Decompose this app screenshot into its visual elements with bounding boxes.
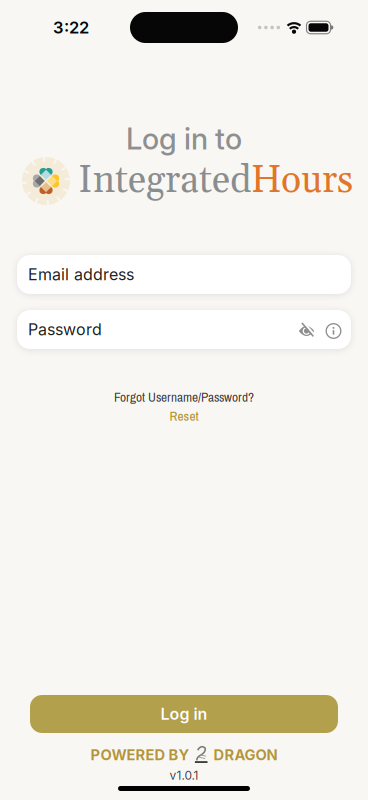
staticText: Forgot Username/Password?	[114, 388, 254, 406]
button[interactable]: Password requirements	[315, 323, 351, 338]
staticText: v1.0.1	[169, 768, 198, 782]
button[interactable]: Show password	[298, 322, 315, 339]
staticText: Password	[28, 320, 102, 339]
button[interactable]: Reset	[169, 407, 198, 425]
staticText: Integrated	[78, 157, 251, 205]
staticText: 3:22	[53, 17, 89, 37]
staticText: Hours	[251, 157, 353, 205]
button[interactable]: Log in	[0, 695, 368, 733]
staticText: POWERED BY	[90, 746, 189, 764]
staticText: Reset	[169, 407, 198, 425]
staticText: Log in to	[126, 121, 242, 156]
staticText: DRAGON	[213, 746, 277, 764]
staticText: Log in	[160, 704, 207, 724]
button[interactable]: Password	[0, 310, 368, 349]
button[interactable]: Email address	[0, 255, 368, 294]
staticText: Email address	[28, 265, 134, 284]
